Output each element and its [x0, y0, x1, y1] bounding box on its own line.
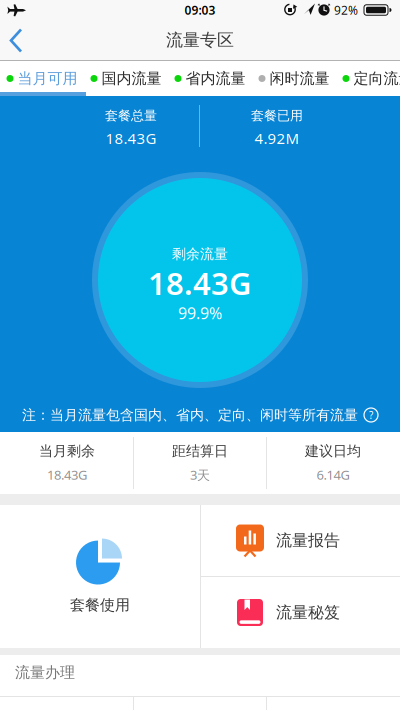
staticText: 套餐已用 — [251, 108, 303, 124]
staticText: 注：当月流量包含国内、省内、定向、闲时等所有流量 — [22, 406, 358, 424]
staticText: 18.43G — [105, 128, 156, 148]
staticText: 流量秘笈 — [276, 602, 340, 623]
staticText: 剩余流量 — [172, 245, 228, 263]
staticText: 建议日均 — [305, 442, 361, 460]
button[interactable]: 流量秘笈 — [200, 577, 400, 648]
button[interactable]: 省内流量 — [168, 61, 252, 92]
staticText: 当月剩余 — [39, 442, 95, 460]
staticText: 18.43G — [47, 466, 87, 484]
staticText: 套餐总量 — [105, 108, 157, 124]
button[interactable]: 套餐使用 — [0, 505, 200, 648]
staticText: 92% — [334, 2, 358, 18]
staticText: 套餐使用 — [70, 596, 130, 614]
button[interactable]: Back — [0, 20, 44, 60]
staticText: 99.9% — [178, 302, 222, 324]
button[interactable]: 说明 — [364, 408, 378, 422]
staticText: 当月可用 — [17, 69, 77, 88]
staticText: 6.14G — [316, 466, 349, 484]
staticText: 4.92M — [254, 128, 299, 148]
staticText: 流量专区 — [166, 29, 234, 51]
button[interactable]: 流量报告 — [200, 505, 400, 576]
staticText: ? — [369, 408, 373, 422]
staticText: 国内流量 — [101, 69, 161, 88]
button[interactable]: 定向流量 — [336, 61, 400, 92]
staticText: 省内流量 — [185, 69, 245, 88]
staticText: 闲时流量 — [269, 69, 329, 88]
staticText: 18.43G — [148, 262, 252, 304]
staticText: 定向流量 — [353, 69, 400, 88]
staticText: 09:03 — [184, 2, 215, 18]
button[interactable]: 当月可用 — [0, 61, 84, 92]
staticText: 流量办理 — [15, 663, 75, 682]
staticText: 距结算日 — [172, 442, 228, 460]
button[interactable]: 国内流量 — [84, 61, 168, 92]
staticText: 3天 — [190, 466, 210, 484]
staticText: 流量报告 — [276, 530, 340, 551]
button[interactable]: 闲时流量 — [252, 61, 336, 92]
